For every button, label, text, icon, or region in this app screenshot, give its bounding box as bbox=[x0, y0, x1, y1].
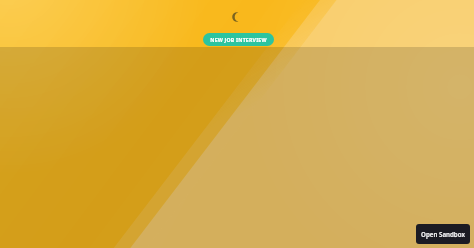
staticText: NEW JOB INTERVIEW bbox=[210, 36, 267, 43]
button[interactable]: Toggle dark mode bbox=[229, 9, 245, 25]
button[interactable]: NEW JOB INTERVIEW bbox=[203, 33, 274, 46]
button[interactable]: Open Sandbox bbox=[416, 224, 470, 244]
staticText: Open Sandbox bbox=[421, 230, 465, 238]
